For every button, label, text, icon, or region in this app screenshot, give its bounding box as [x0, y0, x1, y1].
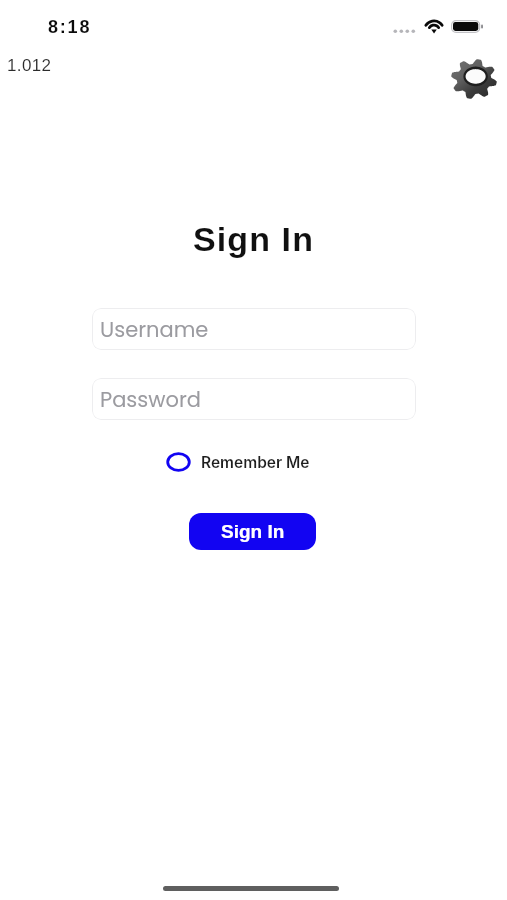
- staticText: Remember Me: [201, 453, 310, 472]
- staticText: Username: [100, 315, 209, 344]
- button[interactable]: Sign In: [189, 513, 316, 550]
- staticText: Password: [100, 385, 201, 414]
- button[interactable]: Password: [92, 378, 416, 420]
- staticText: 1.012: [7, 56, 52, 75]
- button[interactable]: Remember Me: [166, 450, 310, 474]
- button[interactable]: Username: [92, 308, 416, 350]
- staticText: 8:18: [48, 17, 92, 37]
- button[interactable]: Settings: [450, 53, 498, 101]
- staticText: Sign In: [221, 521, 285, 542]
- staticText: Sign In: [0, 220, 507, 258]
